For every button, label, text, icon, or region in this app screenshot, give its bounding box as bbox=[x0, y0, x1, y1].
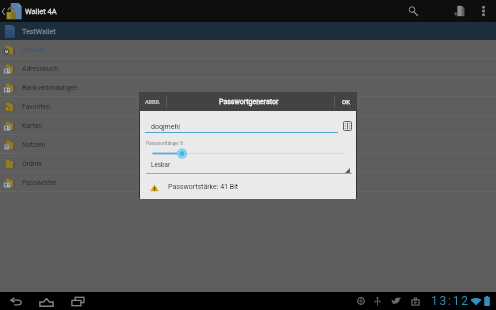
staticText: Karten bbox=[22, 122, 43, 130]
staticText: doqjmehi bbox=[151, 123, 181, 131]
staticText: ABBR. bbox=[145, 99, 161, 105]
button[interactable]: Ordner bbox=[0, 154, 496, 173]
staticText: Favoriten bbox=[22, 103, 50, 111]
button[interactable]: Generate password bbox=[343, 121, 352, 131]
staticText: TestWallet bbox=[22, 27, 56, 35]
staticText: Bankverbindungen bbox=[22, 84, 79, 92]
button[interactable]: Recent apps bbox=[70, 293, 87, 310]
staticText: 13:12 bbox=[431, 294, 470, 308]
button[interactable]: Bankverbindungen bbox=[0, 78, 496, 97]
button[interactable]: Search bbox=[400, 0, 426, 22]
staticText: Ordner bbox=[22, 160, 43, 168]
button[interactable]: TestWallet bbox=[0, 22, 496, 40]
button[interactable]: Back bbox=[8, 293, 24, 309]
button[interactable]: Notizen bbox=[0, 135, 496, 154]
staticText: OK bbox=[342, 98, 350, 105]
staticText: Passwortlänge: 8 bbox=[146, 141, 183, 147]
staticText: Verlauf bbox=[22, 46, 44, 54]
button[interactable]: ABBR. bbox=[139, 92, 166, 111]
button[interactable] bbox=[140, 147, 356, 160]
button[interactable]: More options bbox=[471, 0, 496, 22]
button[interactable]: Verlauf bbox=[0, 40, 496, 59]
button[interactable]: New entry bbox=[446, 0, 472, 22]
staticText: Passwortgenerator bbox=[219, 98, 279, 106]
staticText: Passwortstärke: 41 Bit bbox=[168, 183, 239, 191]
button[interactable]: Lesbar bbox=[140, 160, 356, 174]
button[interactable]: Navigate up bbox=[0, 0, 26, 22]
staticText: Notizen bbox=[22, 141, 46, 149]
button[interactable]: Karten bbox=[0, 116, 496, 135]
staticText: Adressbuch bbox=[22, 65, 58, 73]
button[interactable]: Favoriten bbox=[0, 97, 496, 116]
staticText: Wallet 4A bbox=[25, 7, 57, 16]
button[interactable]: Passwörter bbox=[0, 173, 496, 192]
staticText: Passwörter bbox=[22, 179, 57, 187]
staticText: Lesbar bbox=[151, 161, 171, 168]
button[interactable]: Adressbuch bbox=[0, 59, 496, 78]
button[interactable]: OK bbox=[335, 92, 357, 111]
button[interactable]: Home bbox=[38, 293, 55, 310]
